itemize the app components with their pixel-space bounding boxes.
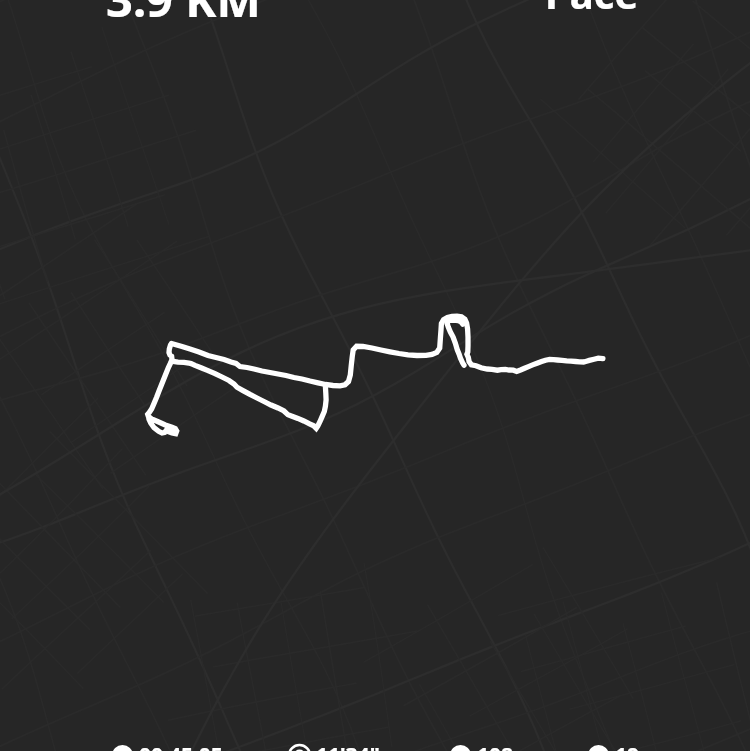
- staticText: 3.9 KM: [106, 0, 261, 31]
- staticText: 11'34": [316, 741, 380, 751]
- staticText: Pace: [545, 0, 639, 20]
- staticText: 00:45:05: [139, 741, 223, 751]
- staticText: 108: [477, 741, 514, 751]
- staticText: 19: [615, 741, 640, 751]
- button[interactable]: Duration: [112, 741, 223, 751]
- button[interactable]: Elevation: [588, 741, 640, 751]
- button[interactable]: Average pace: [289, 741, 380, 751]
- button[interactable]: Calories: [450, 741, 514, 751]
